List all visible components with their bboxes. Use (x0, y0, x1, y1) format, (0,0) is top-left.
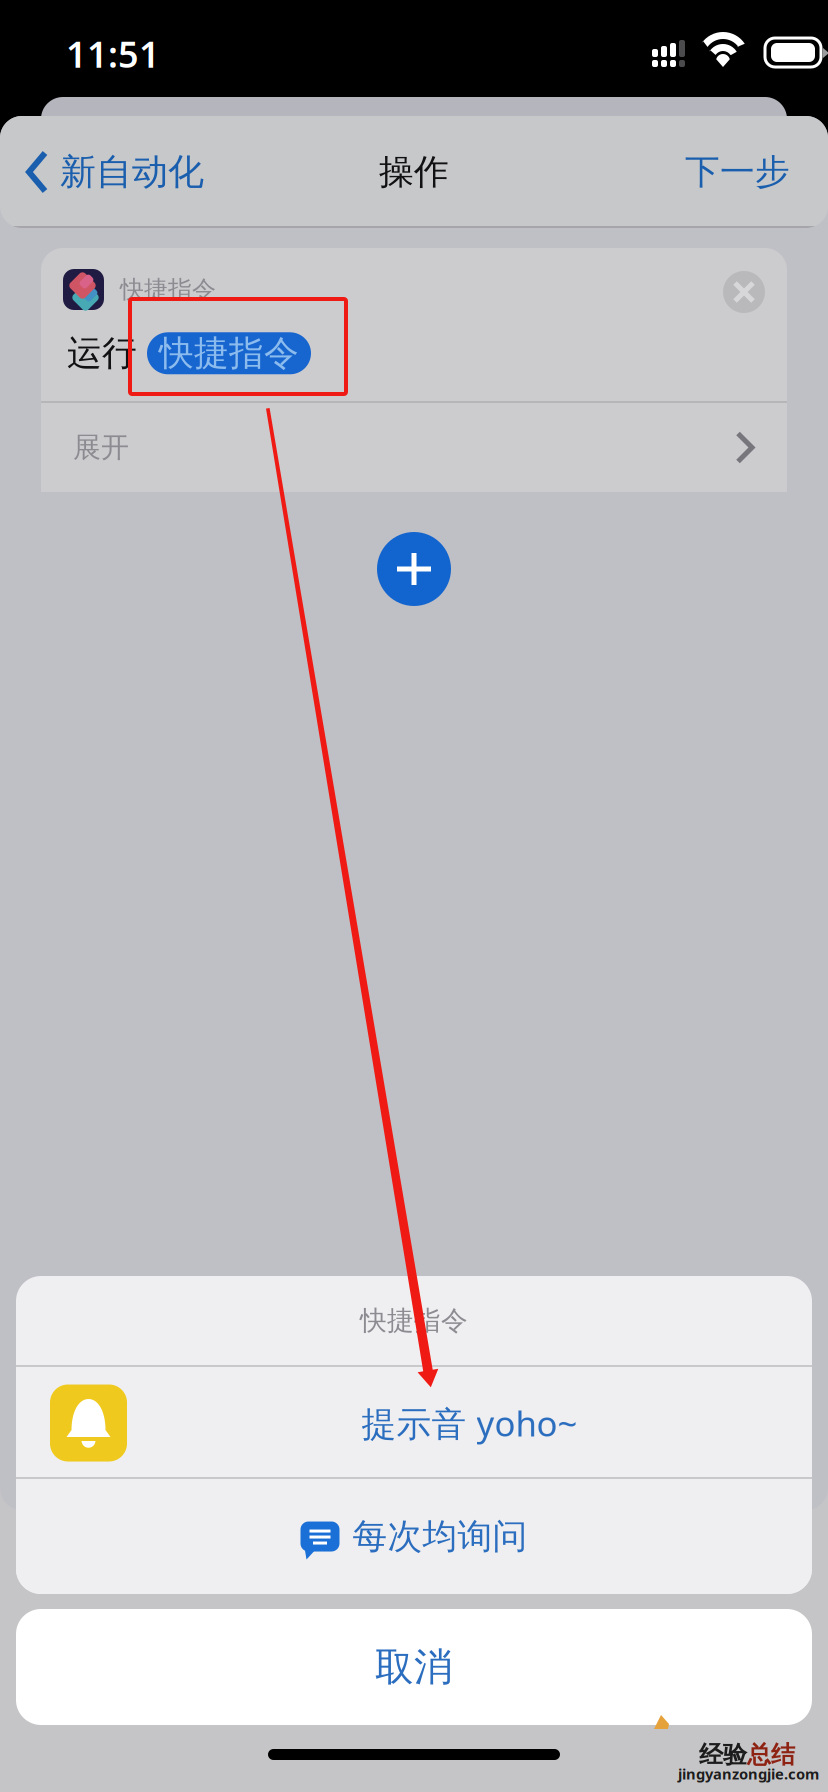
staticText: 取消 (375, 1643, 453, 1691)
staticText: 提示音 yoho~ (361, 1400, 577, 1446)
button[interactable]: 新自动化 (18, 143, 212, 201)
staticText: 快捷指令 (120, 275, 216, 304)
staticText: 快捷指令 (159, 332, 299, 375)
button[interactable]: 取消 (16, 1609, 812, 1725)
button[interactable]: 每次均询问 (16, 1479, 812, 1594)
staticText: 总结 (747, 1740, 795, 1769)
staticText: 快捷指令 (360, 1304, 468, 1337)
button[interactable]: 下一步 (675, 143, 800, 201)
staticText: 经验 (699, 1740, 747, 1769)
button[interactable]: 提示音 yoho~ (16, 1367, 812, 1479)
staticText: 新自动化 (60, 150, 204, 194)
staticText: 运行 (67, 332, 137, 375)
button[interactable]: 移除操作 (723, 271, 765, 313)
staticText: 每次均询问 (352, 1515, 527, 1558)
staticText: 11:51 (66, 30, 160, 78)
staticText: jingyanzongjie.com (678, 1764, 819, 1783)
button[interactable]: 展开 (41, 403, 787, 492)
button[interactable]: 添加操作 (377, 532, 451, 606)
staticText: 下一步 (685, 151, 790, 193)
staticText: 展开 (73, 430, 129, 465)
staticText: 操作 (379, 151, 449, 193)
